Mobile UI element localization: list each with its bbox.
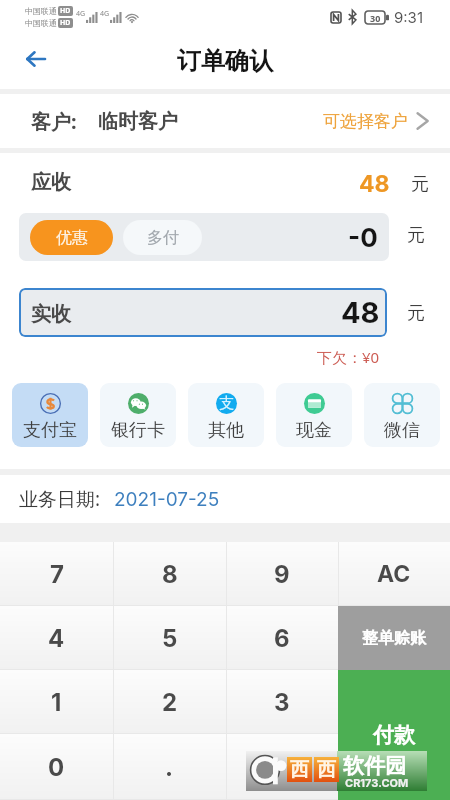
button[interactable]: 9 — [226, 542, 338, 606]
staticText: 4G — [76, 9, 86, 19]
staticText: 48 — [359, 170, 390, 198]
other: Backspace — [267, 757, 297, 778]
staticText: 整单赊账 — [362, 628, 426, 648]
staticText: 48 — [341, 295, 380, 330]
button[interactable]: 支 — [188, 383, 264, 447]
staticText: HD — [60, 6, 71, 16]
button[interactable]: 5 — [113, 606, 226, 670]
button[interactable]: 2 — [113, 670, 226, 734]
staticText: 1 — [51, 688, 62, 717]
staticText: 3 — [274, 688, 290, 717]
button[interactable]: AC — [338, 542, 450, 606]
staticText: 应收 — [31, 170, 71, 195]
staticText: 支 — [219, 394, 234, 413]
staticText: 2021-07-25 — [114, 488, 220, 511]
staticText: 业务日期: — [19, 486, 101, 512]
staticText: 9:31 — [394, 8, 423, 26]
button[interactable]: . — [113, 734, 226, 800]
staticText: 0 — [48, 753, 65, 782]
button[interactable]: 整单赊账 — [338, 606, 450, 670]
staticText: 西 — [317, 758, 336, 782]
button[interactable]: 7 — [0, 542, 113, 606]
staticText: 中国联通 — [25, 6, 57, 16]
button[interactable]: 6 — [226, 606, 338, 670]
button[interactable]: 8 — [113, 542, 226, 606]
button[interactable]: 优惠 — [30, 220, 113, 255]
staticText: 4 — [48, 624, 65, 653]
staticText: 实收 — [31, 302, 71, 327]
staticText: 元 — [407, 302, 425, 325]
staticText: 多付 — [147, 228, 179, 248]
staticText: 软件园 — [343, 753, 406, 779]
staticText: 8 — [162, 560, 178, 589]
staticText: 4G — [100, 9, 110, 19]
staticText: 其他 — [208, 419, 244, 442]
staticText: 7 — [50, 560, 64, 589]
staticText: 优惠 — [56, 228, 88, 248]
staticText: HD — [60, 18, 71, 28]
staticText: 银行卡 — [111, 419, 165, 442]
button[interactable]: 现金 — [276, 383, 352, 447]
staticText: 客户: — [31, 108, 77, 135]
button[interactable]: Backspace — [226, 734, 338, 800]
staticText: 支付宝 — [23, 419, 77, 442]
staticText: -0 — [348, 222, 378, 253]
staticText: 6 — [274, 624, 290, 653]
button[interactable]: 3 — [226, 670, 338, 734]
button[interactable]: 客户: — [0, 94, 450, 148]
button[interactable]: 微信 — [364, 383, 440, 447]
staticText: 9 — [274, 560, 290, 589]
staticText: 2 — [162, 688, 178, 717]
staticText: 5 — [162, 624, 178, 653]
button[interactable]: 多付 — [123, 220, 202, 255]
staticText: 临时客户 — [98, 109, 178, 134]
staticText: . — [165, 753, 174, 782]
staticText: CR173.COM — [345, 776, 409, 789]
staticText: 微信 — [384, 419, 420, 442]
button[interactable]: 1 — [0, 670, 113, 734]
staticText: 下欠：¥0 — [317, 347, 380, 367]
button[interactable]: 0 — [0, 734, 113, 800]
staticText: 30 — [370, 12, 381, 24]
button[interactable]: 银行卡 — [100, 383, 176, 447]
staticText: AC — [377, 560, 411, 588]
staticText: 现金 — [296, 419, 332, 442]
button[interactable]: 付款 — [338, 670, 450, 800]
staticText: 元 — [411, 173, 429, 196]
staticText: 订单确认 — [177, 46, 273, 76]
button[interactable]: Back — [0, 36, 70, 89]
button[interactable]: 业务日期: — [0, 475, 450, 523]
staticText: 付款 — [373, 722, 415, 748]
staticText: 可选择客户 — [323, 111, 408, 132]
staticText: 西 — [290, 758, 309, 782]
button[interactable]: 实收 — [19, 288, 387, 337]
staticText: 元 — [407, 224, 425, 247]
button[interactable]: 支付宝 — [12, 383, 88, 447]
button[interactable]: 4 — [0, 606, 113, 670]
staticText: 中国联通 — [25, 18, 57, 28]
